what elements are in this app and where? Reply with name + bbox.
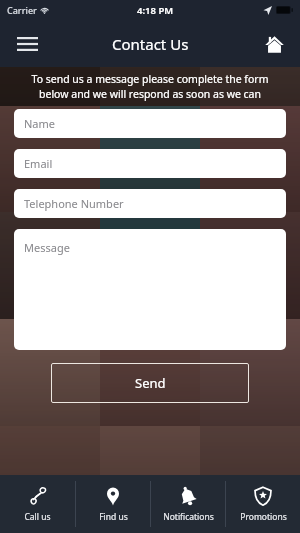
button[interactable]: Message [14,229,286,350]
button[interactable]: Notifications [151,475,225,533]
staticText: Find us [99,511,128,523]
staticText: To send us a message please complete the… [8,72,292,101]
button[interactable]: Promotions [226,475,300,533]
staticText: Promotions [240,511,287,523]
button[interactable]: Telephone Number [14,189,286,218]
button[interactable]: Home [256,26,292,62]
button[interactable]: Find us [76,475,150,533]
staticText: Message [24,240,70,255]
button[interactable]: Name [14,109,286,138]
staticText: Carrier [7,4,37,16]
button[interactable]: Send [51,363,249,403]
button[interactable]: Email [14,149,286,178]
staticText: Name [24,116,56,131]
button[interactable]: Menu [9,26,45,62]
staticText: Email [24,156,53,171]
staticText: Notifications [163,511,214,523]
staticText: Call us [24,511,51,523]
staticText: Send [135,374,166,392]
staticText: Telephone Number [24,196,124,211]
button[interactable]: Call us [0,475,75,533]
staticText: 4:18 PM [137,4,174,17]
staticText: Contact Us [112,34,189,54]
